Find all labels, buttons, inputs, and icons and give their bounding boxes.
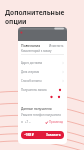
staticText: +7 ... — [25, 120, 31, 124]
staticText: Адрес доставки — [21, 61, 43, 65]
button[interactable]: Пожелания — [21, 43, 64, 48]
button[interactable]: Адрес доставки — [21, 61, 64, 65]
staticText: опции — [5, 17, 27, 26]
button[interactable]: +7 ... — [21, 119, 64, 125]
staticText: Изменить — [49, 44, 64, 48]
button[interactable]: Дата и время — [21, 70, 64, 74]
staticText: Заказать — [46, 133, 61, 137]
button[interactable]: ~988 ₽ — [21, 131, 64, 139]
staticText: Комментарий к заказу — [21, 49, 52, 53]
button[interactable]: Способ оплаты — [21, 79, 64, 83]
staticText: ~988 ₽ — [24, 133, 35, 137]
staticText: Получатель заказа — [21, 88, 47, 92]
staticText: Промокод — [49, 120, 63, 124]
staticText: Способ оплаты — [21, 79, 42, 83]
staticText: Пожелания — [21, 43, 41, 48]
staticText: Укажите телефон получателя — [21, 113, 61, 117]
staticText: Дополнительные — [5, 8, 65, 17]
staticText: Дата и время — [21, 70, 40, 74]
staticText: Данные получателя — [21, 107, 52, 111]
